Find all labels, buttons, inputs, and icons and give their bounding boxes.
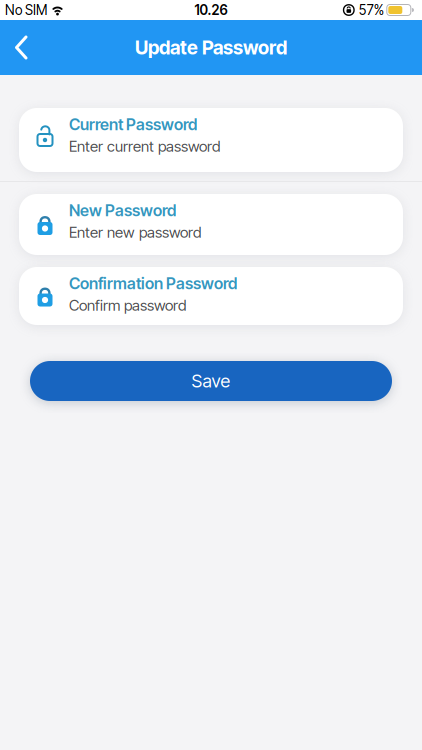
staticText: Current Password <box>69 115 197 134</box>
staticText: Confirm password <box>69 296 186 314</box>
staticText: Update Password <box>135 36 287 59</box>
staticText: Confirmation Password <box>69 274 237 293</box>
button[interactable]: Back <box>0 18 34 77</box>
staticText: New Password <box>69 201 176 220</box>
staticText: Enter new password <box>69 223 201 241</box>
staticText: Save <box>191 370 230 392</box>
staticText: 57% <box>359 2 384 18</box>
staticText: 10.26 <box>194 2 227 18</box>
button[interactable]: Confirmation Password <box>19 267 403 325</box>
button[interactable]: Current Password <box>19 108 403 172</box>
staticText: No SIM <box>5 2 47 18</box>
button[interactable]: New Password <box>19 194 403 255</box>
staticText: Enter current password <box>69 137 220 155</box>
button[interactable]: Save <box>30 361 392 401</box>
